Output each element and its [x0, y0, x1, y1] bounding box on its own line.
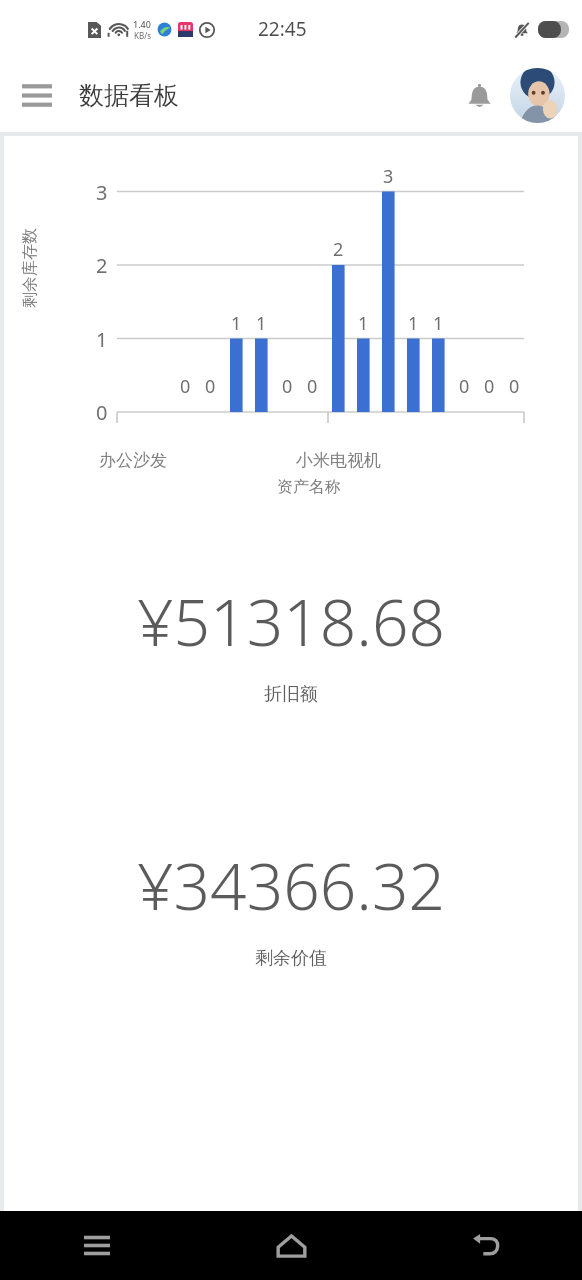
staticText: 2	[333, 237, 344, 262]
staticText: 0	[459, 374, 470, 399]
staticText: 资产名称	[277, 477, 341, 497]
staticText: 剩余库存数	[20, 228, 40, 308]
staticText: 0	[509, 374, 520, 399]
button[interactable]: 返回	[388, 1211, 582, 1280]
staticText: 1	[358, 311, 369, 336]
staticText: 0	[180, 374, 191, 399]
staticText: 22:45	[258, 16, 307, 42]
staticText: 3	[383, 164, 394, 189]
staticText: 1.40	[133, 18, 151, 30]
staticText: ¥34366.32	[137, 842, 445, 929]
staticText: 0	[307, 374, 318, 399]
staticText: 0	[282, 374, 293, 399]
staticText: 办公沙发	[99, 450, 167, 471]
staticText: 3	[96, 179, 108, 206]
button[interactable]: 通知	[458, 75, 500, 117]
button[interactable]: 个人头像	[510, 68, 565, 123]
staticText: 小米电视机	[296, 450, 381, 471]
staticText: 1	[96, 326, 108, 353]
button[interactable]: 最近任务	[0, 1211, 194, 1280]
staticText: 2	[96, 252, 108, 279]
staticText: 1	[408, 311, 419, 336]
staticText: 数据看板	[79, 80, 179, 111]
staticText: 0	[96, 399, 108, 426]
staticText: 1	[231, 311, 242, 336]
staticText: 剩余价值	[255, 947, 327, 970]
button[interactable]: 主屏幕	[194, 1211, 388, 1280]
button[interactable]: 菜单	[14, 72, 60, 118]
staticText: 折旧额	[264, 683, 318, 706]
staticText: 0	[205, 374, 216, 399]
staticText: 1	[256, 311, 267, 336]
staticText: 1	[433, 311, 444, 336]
staticText: ¥51318.68	[137, 578, 445, 665]
staticText: KB/s	[134, 30, 151, 41]
staticText: 0	[484, 374, 495, 399]
